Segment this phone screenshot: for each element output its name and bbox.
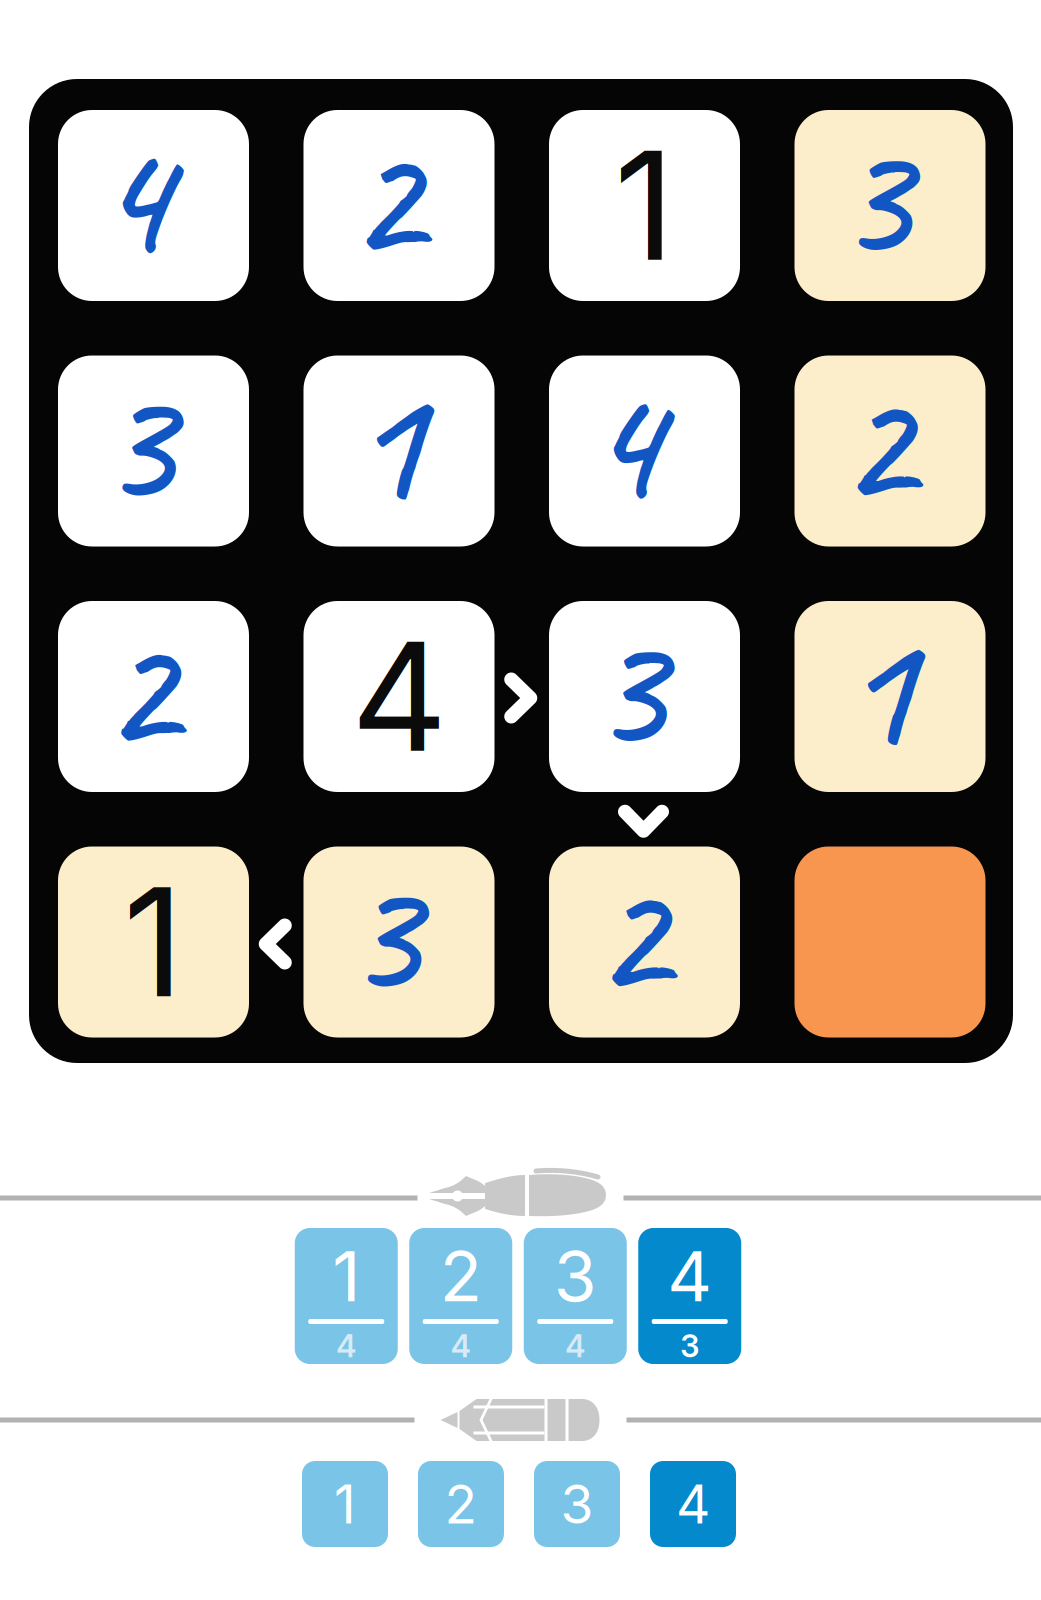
staticText: 1 (349, 339, 423, 547)
button[interactable]: 4 (650, 1461, 736, 1547)
staticText: 1 (840, 584, 914, 793)
button[interactable]: 1 (302, 1461, 388, 1547)
button[interactable]: 2 (303, 110, 494, 301)
staticText: 3 (554, 1234, 597, 1318)
button[interactable]: 2 (58, 601, 249, 792)
staticText: 4 (676, 1472, 710, 1536)
button[interactable]: 4 (638, 1228, 741, 1364)
staticText: 3 (835, 93, 909, 302)
staticText: 3 (680, 1327, 699, 1364)
staticText: 4 (351, 606, 447, 787)
button[interactable]: 4 (303, 601, 494, 792)
button[interactable]: 3 (549, 601, 740, 792)
staticText: 4 (565, 1327, 585, 1364)
staticText: 2 (444, 1472, 477, 1536)
button[interactable]: 3 (794, 110, 985, 301)
staticText: 3 (344, 830, 418, 1038)
button[interactable]: 4 (549, 355, 740, 546)
staticText: 3 (98, 339, 172, 547)
button[interactable]: 2 (409, 1228, 512, 1364)
button[interactable] (794, 846, 985, 1037)
staticText: 2 (101, 584, 175, 793)
staticText: 4 (94, 93, 168, 302)
staticText: 2 (838, 339, 912, 547)
button[interactable]: 2 (418, 1461, 504, 1547)
staticText: 4 (667, 1234, 712, 1318)
staticText: 2 (592, 830, 666, 1038)
staticText: 4 (585, 339, 659, 547)
button[interactable]: 1 (794, 601, 985, 792)
button[interactable]: 3 (303, 846, 494, 1037)
staticText: 1 (614, 115, 675, 296)
button[interactable]: 2 (794, 355, 985, 546)
staticText: 3 (589, 584, 663, 793)
button[interactable]: 2 (549, 846, 740, 1037)
staticText: 4 (451, 1327, 471, 1364)
button[interactable]: 1 (295, 1228, 398, 1364)
staticText: 2 (440, 1234, 482, 1318)
staticText: 2 (347, 93, 421, 302)
button[interactable]: 4 (58, 110, 249, 301)
staticText: 3 (560, 1472, 593, 1536)
button[interactable]: 3 (524, 1228, 627, 1364)
button[interactable]: 3 (534, 1461, 620, 1547)
button[interactable]: 1 (58, 846, 249, 1037)
button[interactable]: 3 (58, 355, 249, 546)
staticText: 1 (332, 1234, 360, 1318)
button[interactable]: 1 (549, 110, 740, 301)
button[interactable]: 1 (303, 355, 494, 546)
staticText: 1 (334, 1472, 356, 1536)
staticText: 1 (123, 852, 184, 1032)
staticText: 4 (336, 1327, 356, 1364)
